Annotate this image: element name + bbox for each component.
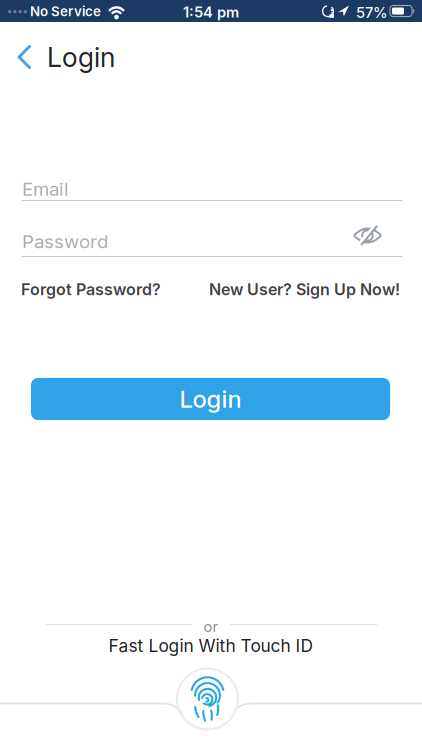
- staticText: New User? Sign Up Now!: [209, 280, 400, 299]
- button[interactable]: Login: [31, 378, 390, 420]
- staticText: Forgot Password?: [21, 280, 161, 299]
- staticText: Password: [22, 230, 108, 252]
- staticText: or: [203, 618, 218, 635]
- button[interactable]: Login with Touch ID: [176, 667, 239, 730]
- button[interactable]: Back: [19, 46, 29, 67]
- staticText: Email: [22, 178, 69, 200]
- button[interactable]: Forgot Password?: [21, 280, 161, 299]
- staticText: Login: [179, 385, 241, 413]
- staticText: Fast Login With Touch ID: [108, 635, 313, 656]
- staticText: 1:54 pm: [183, 3, 239, 21]
- staticText: 57%: [356, 4, 388, 21]
- button[interactable]: Show password: [354, 228, 381, 243]
- button[interactable]: New User? Sign Up Now!: [209, 280, 400, 299]
- staticText: No Service: [30, 3, 101, 19]
- staticText: Login: [47, 41, 115, 73]
